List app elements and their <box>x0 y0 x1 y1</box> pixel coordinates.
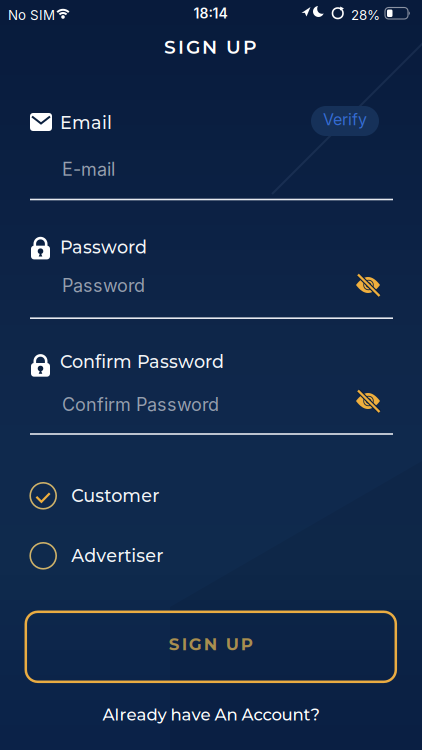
staticText: S I G N U P <box>169 634 253 654</box>
staticText: Confirm Password <box>60 351 224 372</box>
staticText: Advertiser <box>71 545 163 567</box>
button[interactable]: Advertiser <box>30 543 163 569</box>
staticText: Verify <box>323 110 367 129</box>
button[interactable]: Already have An Account? <box>61 704 361 725</box>
button[interactable] <box>355 272 381 298</box>
button[interactable]: S I G N U P <box>26 612 396 682</box>
staticText: Already have An Account? <box>102 704 319 725</box>
button[interactable] <box>355 388 381 414</box>
staticText: Password <box>62 275 145 296</box>
staticText: Confirm Password <box>62 394 219 415</box>
staticText: E-mail <box>62 158 115 180</box>
staticText: Email <box>60 112 112 133</box>
staticText: No SIM <box>8 7 55 23</box>
staticText: Customer <box>71 485 159 507</box>
button[interactable]: Customer <box>30 483 159 509</box>
staticText: 18:14 <box>193 5 227 22</box>
staticText: Password <box>60 236 147 258</box>
staticText: S I G N U P <box>164 36 257 58</box>
staticText: 28% <box>351 7 380 23</box>
button[interactable]: Verify <box>311 106 379 136</box>
